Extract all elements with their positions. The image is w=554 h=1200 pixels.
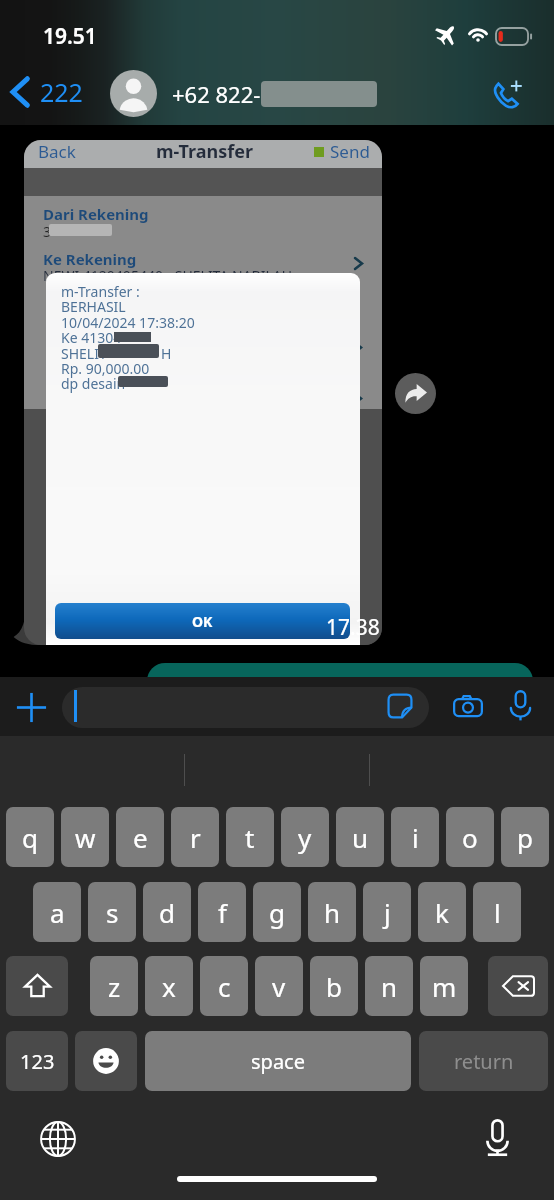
staticText: +62 822- [172,79,261,109]
staticText: 17.38 [326,613,380,642]
button[interactable]: Audio message [501,686,540,725]
staticText: p [517,820,533,855]
button[interactable]: w [61,807,109,867]
staticText: m-Transfer : [61,282,140,301]
button[interactable]: e [116,807,164,867]
button[interactable]: h [308,882,356,942]
staticText: Dari Rekening [43,204,149,224]
staticText: d [159,895,175,930]
staticText: 10/04/2024 17:38:20 [61,313,195,332]
button[interactable] [147,663,533,707]
button[interactable] [62,687,429,728]
button[interactable]: j [363,882,411,942]
button[interactable]: Shift [6,956,68,1016]
staticText: c [218,969,231,1004]
button[interactable]: g [253,882,301,942]
staticText: n [381,969,398,1004]
staticText: SHELIT [61,344,107,363]
button[interactable]: l [473,882,521,942]
button[interactable]: s [88,882,136,942]
staticText: k [435,895,449,930]
button[interactable]: c [200,956,248,1016]
staticText: r [190,820,201,855]
staticText: NEWI 4120405440 - SHELITA NABILAU [43,266,292,285]
button[interactable]: +62 822- [110,70,377,117]
button[interactable]: n [365,956,413,1016]
staticText: o [462,820,478,855]
button[interactable]: y [281,807,329,867]
button[interactable]: 222 [4,70,89,114]
staticText: b [326,969,342,1004]
staticText: x [162,969,176,1004]
staticText: v [272,969,286,1004]
staticText: l [494,895,501,930]
button[interactable]: return [419,1031,548,1091]
button[interactable]: 123 [6,1031,68,1091]
button[interactable]: r [171,807,219,867]
button[interactable]: m [420,956,468,1016]
staticText: h [324,895,341,930]
staticText: 19.51 [43,22,97,51]
staticText: Ke Rekening [43,249,137,269]
staticText: t [245,820,255,855]
staticText: 3 [43,222,52,241]
staticText: m-Transfer [156,140,254,164]
button[interactable]: Camera [449,688,487,726]
staticText: Rp. 90,000.00 [61,359,150,378]
staticText: Back [38,140,76,163]
button[interactable]: z [90,956,138,1016]
button[interactable]: a [33,882,81,942]
button[interactable]: v [255,956,303,1016]
staticText: e [133,820,148,855]
staticText: z [108,969,121,1004]
staticText: y [298,820,312,855]
staticText: a [50,895,65,930]
button[interactable]: Change keyboard [38,1119,78,1159]
button[interactable]: q [6,807,54,867]
button[interactable]: space [145,1031,411,1091]
staticText: j [384,895,391,930]
button[interactable]: f [198,882,246,942]
staticText: OK [192,612,213,631]
staticText: 123 [20,1048,55,1075]
button[interactable]: i [391,807,439,867]
button[interactable]: Stickers [384,690,415,721]
button[interactable]: Emoji [75,1031,137,1091]
staticText: dp desain [61,374,126,393]
staticText: f [218,895,227,930]
staticText: g [269,895,285,930]
staticText: i [412,820,419,855]
button[interactable]: Backspace [488,956,548,1016]
staticText: space [251,1048,305,1075]
button[interactable]: d [143,882,191,942]
button[interactable]: Add attachment [8,684,54,730]
button[interactable]: t [226,807,274,867]
staticText: Send [330,140,370,163]
staticText: return [454,1048,514,1075]
button[interactable]: x [145,956,193,1016]
staticText: w [75,820,96,855]
button[interactable]: Dictation [477,1118,517,1158]
staticText: u [352,820,369,855]
staticText: q [22,820,38,855]
button[interactable]: u [336,807,384,867]
button[interactable]: k [418,882,466,942]
button[interactable]: b [310,956,358,1016]
button[interactable]: Back [24,140,382,645]
button[interactable]: Add call [483,68,533,118]
staticText: Ke 41304 [61,328,122,347]
button[interactable]: p [501,807,549,867]
staticText: s [106,895,119,930]
staticText: BERHASIL [61,297,126,316]
button[interactable]: Forward [395,373,436,414]
staticText: H [161,344,172,363]
button[interactable]: o [446,807,494,867]
staticText: m [432,969,457,1004]
button[interactable]: OK [55,603,350,639]
staticText: 222 [40,75,83,109]
